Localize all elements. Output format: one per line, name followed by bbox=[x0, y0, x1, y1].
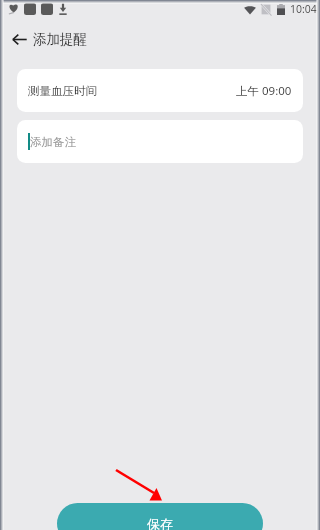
staticText: 测量血压时间 bbox=[28, 84, 97, 98]
staticText: 上午 09:00 bbox=[236, 83, 292, 99]
staticText: 10:04 bbox=[290, 2, 317, 16]
staticText: 保存 bbox=[147, 516, 173, 530]
staticText: 添加提醒 bbox=[33, 31, 87, 48]
button[interactable]: 保存 bbox=[57, 503, 263, 530]
button[interactable]: 测量血压时间 bbox=[17, 69, 303, 112]
button[interactable]: 添加备注 bbox=[17, 120, 303, 163]
button[interactable]: Back bbox=[9, 29, 29, 49]
staticText: 添加备注 bbox=[30, 135, 76, 149]
